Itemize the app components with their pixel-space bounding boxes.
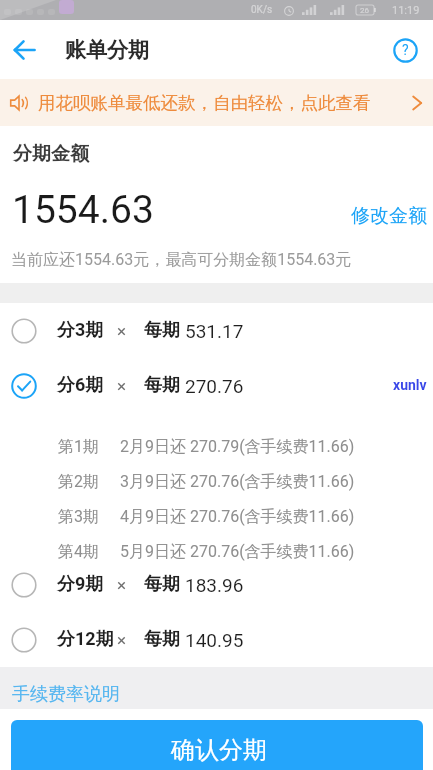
- staticText: 270.76: [185, 375, 244, 397]
- staticText: 3月9日还 270.76(含手续费11.66): [120, 472, 355, 492]
- staticText: 0K/s: [251, 4, 273, 16]
- staticText: 5月9日还 270.76(含手续费11.66): [120, 542, 355, 562]
- staticText: 每期: [144, 374, 180, 397]
- staticText: 账单分期: [65, 37, 149, 63]
- staticText: 分12期: [57, 628, 114, 651]
- staticText: 第1期: [58, 437, 99, 457]
- staticText: 531.17: [185, 320, 244, 342]
- staticText: 26: [360, 6, 369, 15]
- button[interactable]: 分12期: [0, 612, 433, 667]
- staticText: 2月9日还 270.79(含手续费11.66): [120, 437, 355, 457]
- staticText: 分9期: [57, 573, 104, 596]
- staticText: ×: [117, 575, 127, 595]
- button[interactable]: 分9期: [0, 557, 433, 612]
- staticText: 确认分期: [171, 735, 267, 765]
- staticText: 修改金额: [351, 204, 427, 228]
- button[interactable]: 分3期: [0, 303, 433, 358]
- staticText: 183.96: [185, 574, 244, 596]
- staticText: 1554.63: [12, 187, 154, 233]
- staticText: 用花呗账单最低还款，自由轻松，点此查看: [38, 92, 371, 114]
- staticText: 每期: [144, 319, 180, 342]
- staticText: ×: [117, 321, 127, 341]
- staticText: 分期金额: [13, 142, 89, 166]
- button[interactable]: 修改金额: [348, 201, 430, 231]
- button[interactable]: Help: [386, 31, 424, 69]
- staticText: 分3期: [57, 319, 104, 342]
- staticText: 分6期: [57, 374, 104, 397]
- staticText: 第2期: [58, 472, 99, 492]
- staticText: xunlv: [393, 377, 427, 393]
- staticText: ×: [117, 376, 127, 396]
- button[interactable]: 分6期: [0, 358, 433, 413]
- staticText: 第4期: [58, 542, 99, 562]
- button[interactable]: 确认分期: [11, 720, 423, 770]
- staticText: 每期: [144, 628, 180, 651]
- staticText: 140.95: [185, 629, 244, 651]
- staticText: ×: [117, 630, 127, 650]
- staticText: ?: [402, 42, 409, 58]
- staticText: 第3期: [58, 507, 99, 527]
- staticText: 每期: [144, 573, 180, 596]
- button[interactable]: 用花呗账单最低还款，自由轻松，点此查看: [0, 79, 433, 126]
- staticText: 手续费率说明: [12, 683, 120, 706]
- staticText: 4月9日还 270.76(含手续费11.66): [120, 507, 355, 527]
- button[interactable]: 手续费率说明: [6, 679, 126, 710]
- staticText: 当前应还1554.63元，最高可分期金额1554.63元: [11, 250, 352, 270]
- staticText: 11:19: [392, 4, 420, 17]
- button[interactable]: Back: [3, 29, 45, 71]
